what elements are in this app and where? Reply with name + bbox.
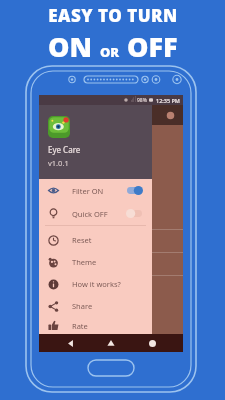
staticText: How it works? <box>72 279 121 289</box>
staticText: Share <box>72 301 93 311</box>
staticText: OFF <box>120 28 178 65</box>
staticText: Quick OFF <box>72 209 108 219</box>
button[interactable]: Filter ON <box>39 179 152 202</box>
button[interactable]: Back <box>60 334 80 352</box>
staticText: OR <box>100 43 120 61</box>
button[interactable]: Quick OFF <box>39 202 152 225</box>
staticText: Theme <box>72 257 97 267</box>
staticText: Filter ON <box>72 186 104 196</box>
staticText: Rate <box>72 321 88 331</box>
staticText: Reset <box>72 235 92 245</box>
button[interactable]: Reset <box>39 229 152 251</box>
staticText: 98% <box>137 97 147 104</box>
button[interactable]: Rate <box>39 317 152 334</box>
button[interactable]: Share <box>39 295 152 317</box>
button[interactable]: Recents <box>142 334 162 352</box>
staticText: v1.0.1 <box>48 158 69 168</box>
button[interactable]: Theme <box>39 251 152 273</box>
staticText: EASY TO TURN <box>48 4 178 27</box>
button[interactable]: Home <box>101 334 121 352</box>
staticText: ON <box>48 28 100 65</box>
staticText: Eye Care <box>48 144 81 155</box>
button[interactable]: How it works? <box>39 273 152 295</box>
staticText: 12:35 PM <box>156 97 180 104</box>
